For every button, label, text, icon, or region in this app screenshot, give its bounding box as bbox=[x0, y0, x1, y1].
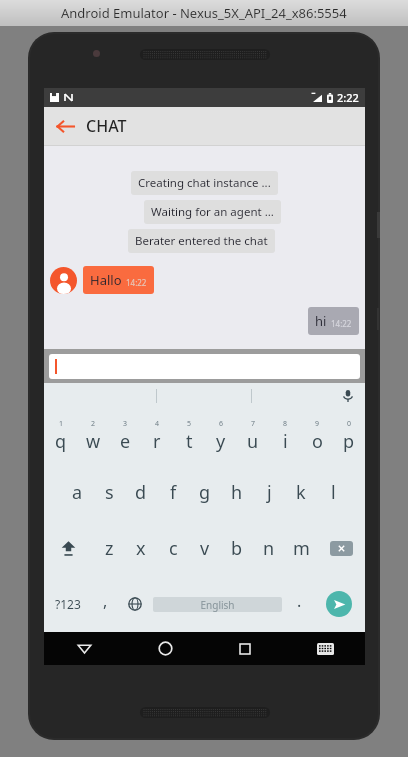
button[interactable]: 6 bbox=[205, 409, 237, 464]
staticText: 9 bbox=[315, 419, 320, 429]
staticText: 8 bbox=[283, 419, 288, 429]
button[interactable]: English bbox=[153, 576, 282, 632]
button[interactable] bbox=[49, 354, 360, 379]
staticText: m bbox=[293, 536, 310, 561]
button[interactable]: d bbox=[125, 464, 157, 520]
staticText: q bbox=[55, 429, 67, 454]
staticText: o bbox=[312, 429, 323, 454]
staticText: 6 bbox=[219, 419, 224, 429]
staticText: v bbox=[200, 536, 210, 561]
staticText: l bbox=[331, 480, 336, 505]
staticText: ?123 bbox=[55, 596, 81, 612]
button[interactable]: f bbox=[157, 464, 189, 520]
button[interactable]: 5 bbox=[173, 409, 205, 464]
staticText: g bbox=[199, 480, 211, 505]
staticText: 14:22 bbox=[331, 318, 352, 329]
staticText: 5 bbox=[187, 419, 192, 429]
staticText: Creating chat instance ... bbox=[138, 175, 271, 191]
staticText: k bbox=[296, 480, 306, 505]
button[interactable]: z bbox=[93, 520, 125, 576]
staticText: 3 bbox=[123, 419, 128, 429]
button[interactable]: g bbox=[189, 464, 221, 520]
staticText: w bbox=[86, 429, 101, 454]
button[interactable]: Hide keyboard bbox=[285, 632, 365, 665]
button[interactable]: ?123 bbox=[44, 576, 92, 632]
button[interactable]: 4 bbox=[141, 409, 173, 464]
staticText: CHAT bbox=[86, 115, 127, 137]
staticText: x bbox=[136, 536, 146, 561]
button[interactable]: n bbox=[253, 520, 285, 576]
button[interactable]: 8 bbox=[269, 409, 301, 464]
staticText: t bbox=[186, 429, 193, 454]
staticText: p bbox=[343, 429, 355, 454]
button[interactable]: b bbox=[221, 520, 253, 576]
staticText: f bbox=[170, 480, 177, 505]
staticText: j bbox=[267, 480, 272, 505]
staticText: s bbox=[105, 480, 114, 505]
button[interactable]: Home bbox=[125, 632, 205, 665]
button[interactable]: h bbox=[221, 464, 253, 520]
staticText: Waiting for an agent ... bbox=[151, 204, 274, 220]
staticText: z bbox=[105, 536, 114, 561]
button[interactable]: hi bbox=[308, 307, 359, 335]
button[interactable]: 0 bbox=[333, 409, 365, 464]
button[interactable]: Recent apps bbox=[205, 632, 285, 665]
staticText: 4 bbox=[155, 419, 160, 429]
button[interactable]: a bbox=[61, 464, 93, 520]
staticText: 7 bbox=[251, 419, 256, 429]
staticText: 14:22 bbox=[126, 277, 147, 288]
staticText: e bbox=[120, 429, 131, 454]
button[interactable]: Shift bbox=[44, 520, 93, 576]
button[interactable]: v bbox=[189, 520, 221, 576]
staticText: h bbox=[231, 480, 243, 505]
staticText: 2:22 bbox=[337, 90, 359, 105]
button[interactable]: Waiting for an agent ... bbox=[144, 200, 281, 224]
staticText: , bbox=[103, 590, 108, 612]
staticText: n bbox=[263, 536, 275, 561]
button[interactable]: Back bbox=[44, 632, 125, 665]
button[interactable]: Berater entered the chat bbox=[128, 229, 275, 253]
staticText: English bbox=[200, 598, 235, 612]
staticText: b bbox=[231, 536, 243, 561]
button[interactable]: m bbox=[285, 520, 317, 576]
staticText: a bbox=[72, 480, 83, 505]
button[interactable]: j bbox=[253, 464, 285, 520]
button[interactable]: 9 bbox=[301, 409, 333, 464]
staticText: d bbox=[135, 480, 147, 505]
staticText: Berater entered the chat bbox=[135, 233, 268, 249]
button[interactable]: Back bbox=[44, 107, 86, 145]
staticText: . bbox=[297, 590, 302, 612]
button[interactable]: Backspace bbox=[317, 520, 365, 576]
button[interactable]: Voice input bbox=[331, 383, 365, 409]
button[interactable]: Agent avatar bbox=[50, 267, 77, 294]
staticText: 0 bbox=[347, 419, 352, 429]
button[interactable]: Hallo bbox=[83, 266, 154, 294]
staticText: r bbox=[153, 429, 161, 454]
staticText: Hallo bbox=[90, 271, 122, 289]
button[interactable]: s bbox=[93, 464, 125, 520]
button[interactable]: , bbox=[92, 576, 119, 632]
button[interactable]: k bbox=[285, 464, 317, 520]
button[interactable]: l bbox=[317, 464, 349, 520]
staticText: 1 bbox=[59, 419, 64, 429]
button[interactable]: 3 bbox=[109, 409, 141, 464]
staticText: c bbox=[169, 536, 178, 561]
staticText: i bbox=[283, 429, 288, 454]
button[interactable]: 1 bbox=[44, 409, 77, 464]
button[interactable]: c bbox=[157, 520, 189, 576]
staticText: Android Emulator - Nexus_5X_API_24_x86:5… bbox=[61, 4, 347, 22]
button[interactable]: Creating chat instance ... bbox=[131, 171, 278, 195]
staticText: hi bbox=[315, 312, 327, 330]
button[interactable]: 2 bbox=[77, 409, 109, 464]
staticText: 2 bbox=[91, 419, 96, 429]
button[interactable]: Send bbox=[313, 576, 365, 632]
button[interactable]: 7 bbox=[237, 409, 269, 464]
button[interactable]: x bbox=[125, 520, 157, 576]
button[interactable]: . bbox=[285, 576, 313, 632]
staticText: u bbox=[247, 429, 259, 454]
staticText: y bbox=[216, 429, 226, 454]
button[interactable]: Change language bbox=[119, 576, 150, 632]
